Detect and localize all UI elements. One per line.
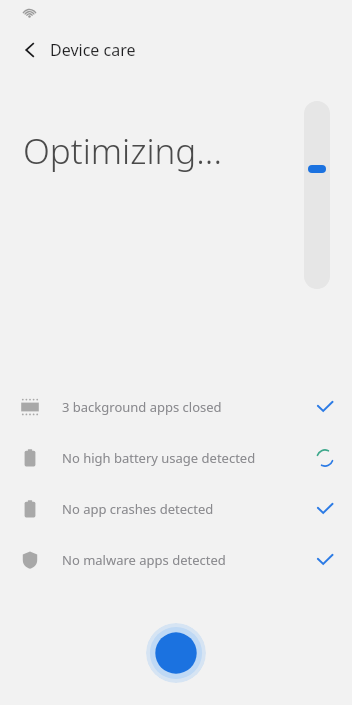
button[interactable]: No app crashes detected — [0, 483, 352, 534]
button[interactable]: No malware apps detected — [0, 534, 352, 585]
button[interactable]: 3 background apps closed — [0, 381, 352, 432]
staticText: No app crashes detected — [62, 500, 214, 518]
button[interactable]: No high battery usage detected — [0, 432, 352, 483]
staticText: Optimizing... — [23, 127, 222, 175]
staticText: 3 background apps closed — [62, 398, 222, 416]
button[interactable]: Back — [12, 32, 48, 68]
staticText: No high battery usage detected — [62, 449, 256, 467]
staticText: No malware apps detected — [62, 551, 226, 569]
button[interactable]: Stop optimizing — [146, 623, 206, 683]
staticText: Device care — [50, 39, 136, 61]
